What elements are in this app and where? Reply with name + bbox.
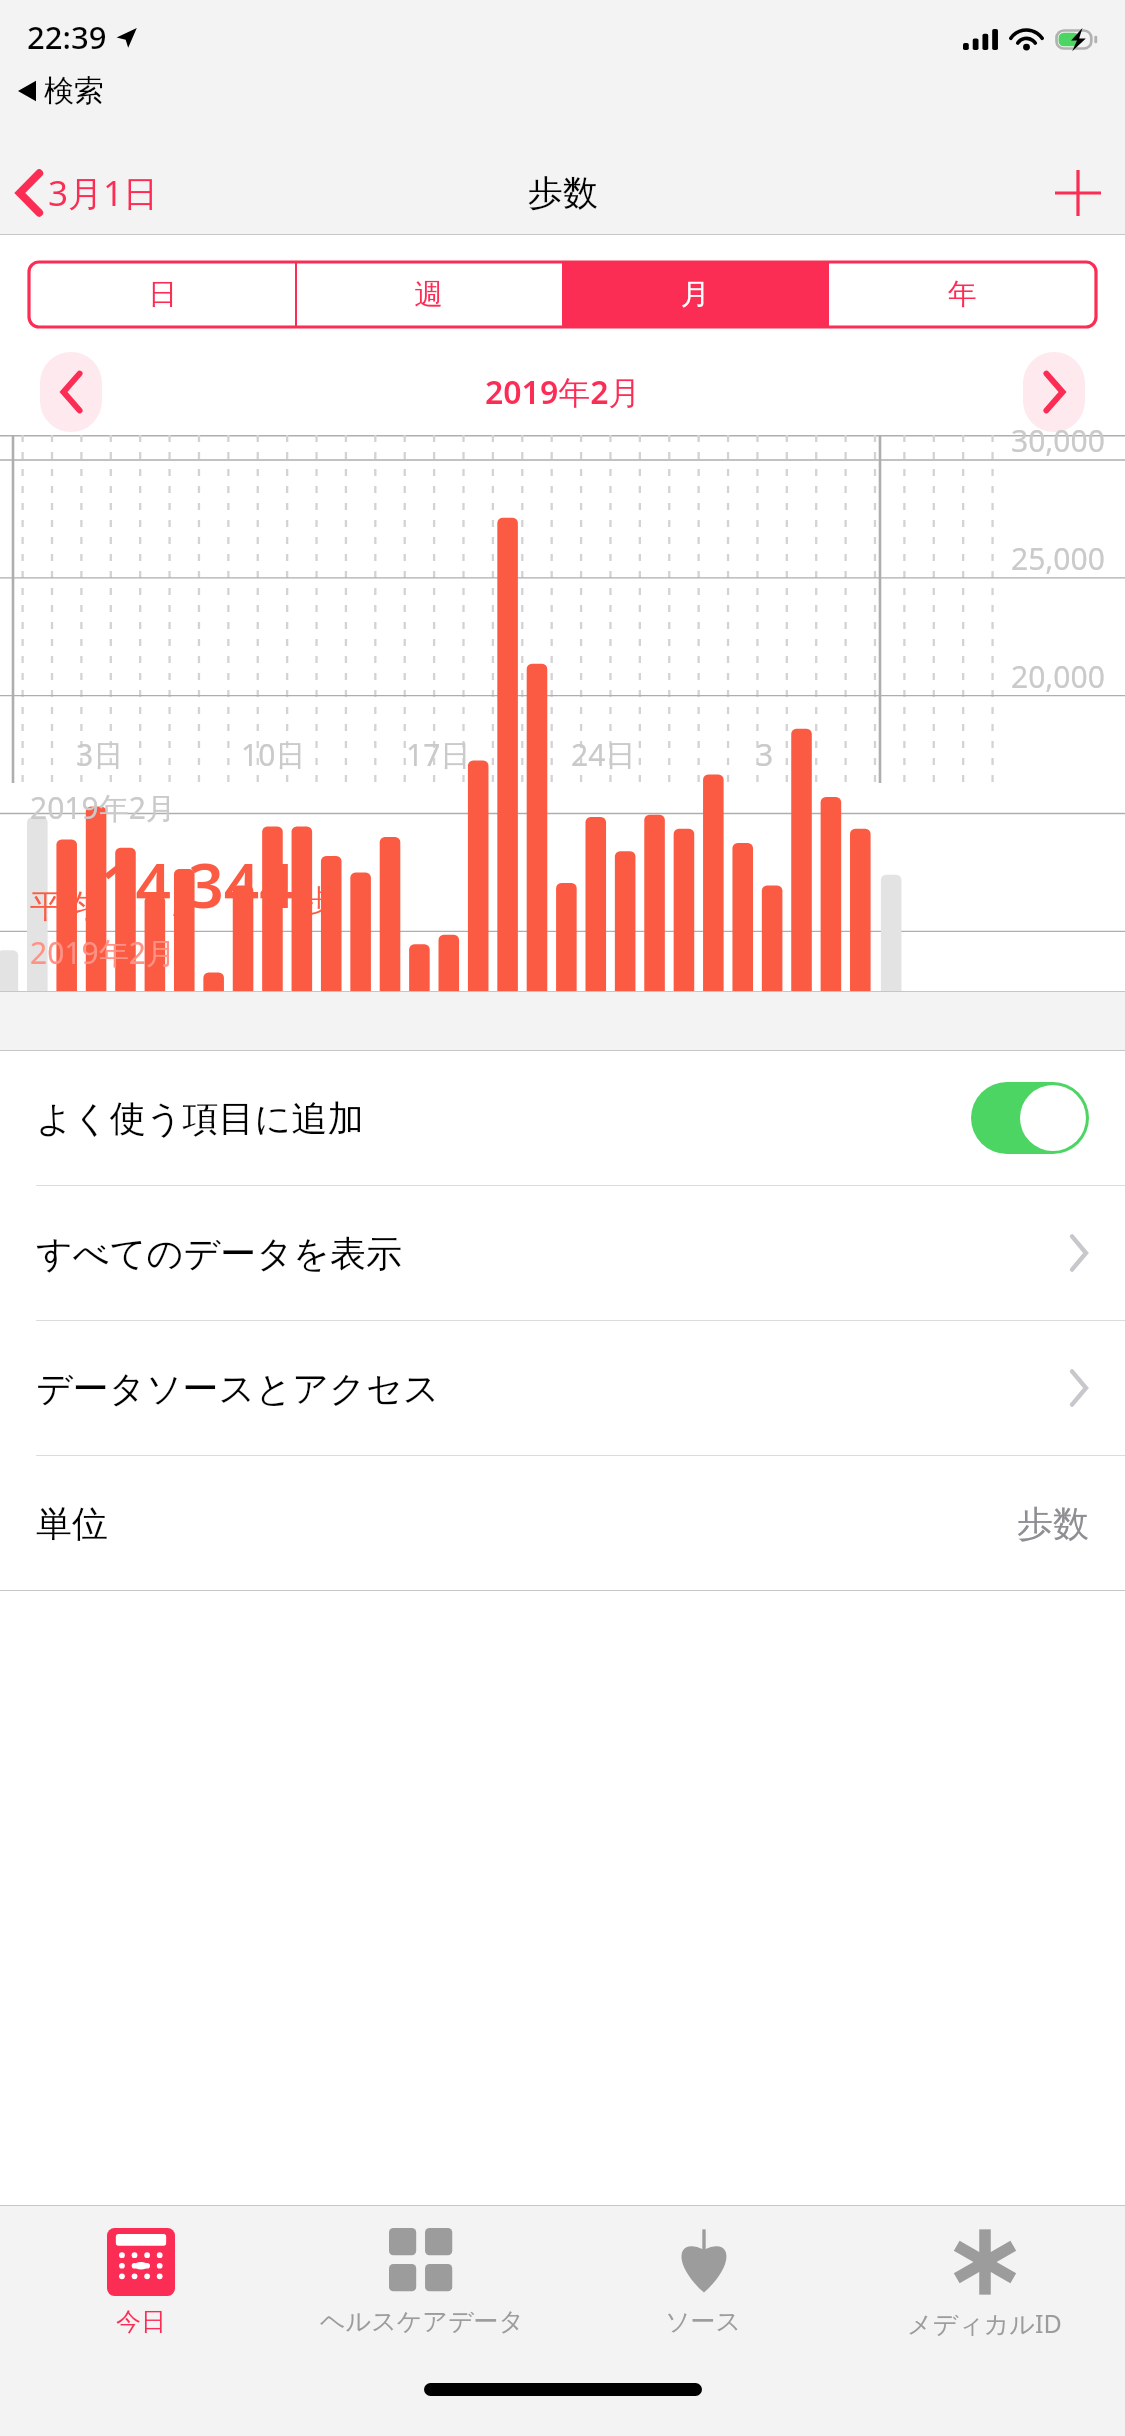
button[interactable]: 日 xyxy=(29,262,295,327)
staticText: 25,000 xyxy=(1011,538,1105,579)
staticText: 週 xyxy=(414,276,443,313)
staticText: ヘルスケアデータ xyxy=(320,2306,525,2337)
staticText: 2019年2月 xyxy=(30,932,176,973)
staticText: 歩数 xyxy=(528,171,598,215)
staticText: 2019年2月 xyxy=(30,787,176,828)
staticText: 歩 xyxy=(303,882,333,920)
staticText: メディカルID xyxy=(907,2306,1062,2340)
staticText: 単位 xyxy=(36,1501,108,1546)
staticText: 日 xyxy=(148,276,177,313)
staticText: 20,000 xyxy=(1011,656,1105,697)
staticText: 歩数 xyxy=(1017,1501,1089,1546)
button[interactable]: すべてのデータを表示 xyxy=(0,1186,1125,1320)
button[interactable]: 前の月 xyxy=(40,352,102,432)
staticText: 3 xyxy=(756,734,774,775)
staticText: 検索 xyxy=(44,72,104,110)
button[interactable]: ソース xyxy=(563,2206,844,2366)
button[interactable]: 今日 xyxy=(0,2206,282,2366)
button[interactable]: よく使う項目に追加 xyxy=(0,1051,1125,1185)
staticText: 30,000 xyxy=(1011,420,1105,461)
staticText: 10日 xyxy=(241,734,306,775)
button[interactable]: メディカルID xyxy=(844,2206,1125,2366)
staticText: 14,344 xyxy=(100,842,295,926)
button[interactable]: 3月1日 xyxy=(0,161,177,225)
button[interactable]: 月 xyxy=(562,262,829,327)
staticText: ソース xyxy=(665,2306,742,2337)
staticText: 月 xyxy=(681,276,710,313)
button[interactable]: 次の月 xyxy=(1023,352,1085,432)
button[interactable]: データソースとアクセス xyxy=(0,1321,1125,1455)
staticText: 平均 xyxy=(30,886,94,926)
staticText: 2019年2月 xyxy=(485,370,641,414)
button[interactable]: 追加 xyxy=(1047,162,1109,224)
staticText: 24日 xyxy=(571,734,636,775)
staticText: 年 xyxy=(948,276,977,313)
staticText: 3日 xyxy=(76,734,124,775)
button[interactable]: 年 xyxy=(829,262,1096,327)
button[interactable]: 単位 xyxy=(0,1456,1125,1590)
button[interactable]: ヘルスケアデータ xyxy=(282,2206,563,2366)
staticText: 22:39 xyxy=(27,16,107,58)
staticText: よく使う項目に追加 xyxy=(36,1096,364,1141)
staticText: すべてのデータを表示 xyxy=(36,1231,402,1276)
staticText: 3月1日 xyxy=(48,169,159,217)
staticText: 今日 xyxy=(116,2306,166,2337)
staticText: 17日 xyxy=(406,734,471,775)
button[interactable]: 週 xyxy=(295,262,562,327)
staticText: データソースとアクセス xyxy=(36,1366,440,1411)
